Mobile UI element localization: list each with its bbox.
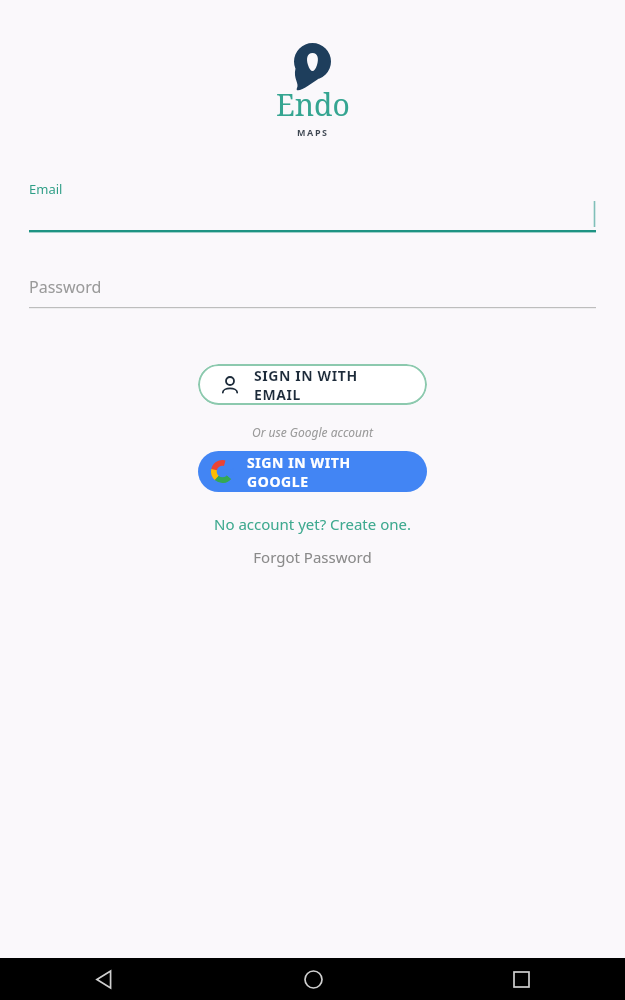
staticText: SIGN IN WITH EMAIL [254,366,405,404]
button[interactable]: Home [209,958,417,1000]
button[interactable]: SIGN IN WITH EMAIL [198,364,427,405]
staticText: Password [29,276,102,298]
button[interactable]: Password [29,233,596,309]
button[interactable]: SIGN IN WITH GOOGLE [198,451,427,492]
staticText: Or use Google account [0,424,625,440]
staticText: SIGN IN WITH GOOGLE [247,453,409,491]
staticText: Forgot Password [253,547,372,567]
button[interactable]: Forgot Password [0,547,625,567]
button[interactable]: Recent apps [417,958,625,1000]
staticText: Email [29,180,63,198]
button[interactable]: No account yet? Create one. [0,514,625,534]
staticText: MAPS [297,126,329,138]
staticText: Endo [276,84,350,125]
button[interactable]: Back [0,958,209,1000]
button[interactable]: Email [29,150,596,233]
staticText: No account yet? Create one. [214,514,411,534]
